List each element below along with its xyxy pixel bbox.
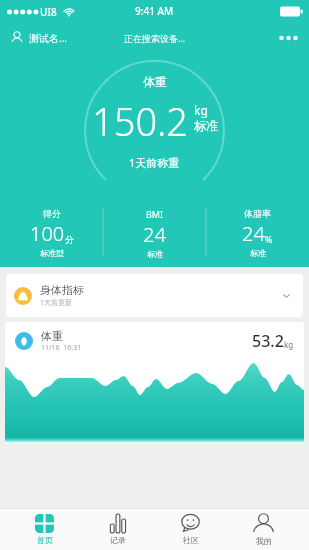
staticText: UI8 <box>40 5 57 19</box>
staticText: 社区 <box>183 535 199 545</box>
staticText: 体重 <box>41 329 63 343</box>
staticText: 身体指标 <box>40 283 84 297</box>
staticText: 1天前称重 <box>129 155 180 170</box>
button[interactable]: BMI <box>103 205 206 262</box>
staticText: 分 <box>65 234 74 245</box>
button[interactable]: More options <box>278 33 299 43</box>
button[interactable]: 体脂率 <box>206 205 309 262</box>
staticText: 9:41 AM <box>135 4 174 18</box>
staticText: 标准 <box>250 248 266 258</box>
staticText: 测试名… <box>29 31 67 45</box>
staticText: 首页 <box>37 535 53 545</box>
button[interactable]: 得分 <box>0 205 103 262</box>
staticText: 记录 <box>110 535 126 545</box>
staticText: 体脂率 <box>244 208 271 219</box>
staticText: BMI <box>146 208 164 220</box>
button[interactable]: 身体指标 <box>6 274 303 317</box>
button[interactable]: 我的 <box>227 509 300 550</box>
button[interactable]: 首页 <box>8 509 81 550</box>
staticText: 24 <box>143 221 166 248</box>
staticText: 1天前更新 <box>40 298 73 308</box>
staticText: 标准型 <box>40 248 64 258</box>
staticText: 53.2 <box>252 330 284 352</box>
button[interactable]: 社区 <box>154 509 227 550</box>
staticText: 标准 <box>194 118 218 133</box>
staticText: 11/16 16:31 <box>41 343 82 353</box>
button[interactable]: 记录 <box>81 509 154 550</box>
staticText: 我的 <box>256 536 272 546</box>
staticText: 得分 <box>43 208 61 219</box>
staticText: 正在搜索设备… <box>124 32 186 44</box>
staticText: 标准 <box>147 249 163 259</box>
staticText: 体重 <box>143 74 167 89</box>
staticText: 100 <box>30 220 65 247</box>
staticText: 24 <box>242 220 265 247</box>
button[interactable]: 测试名… <box>10 31 67 45</box>
button[interactable]: 体重 <box>5 322 304 444</box>
staticText: 150.2 <box>92 95 189 147</box>
staticText: kg <box>194 102 208 118</box>
staticText: kg <box>284 339 294 350</box>
staticText: % <box>265 233 273 245</box>
